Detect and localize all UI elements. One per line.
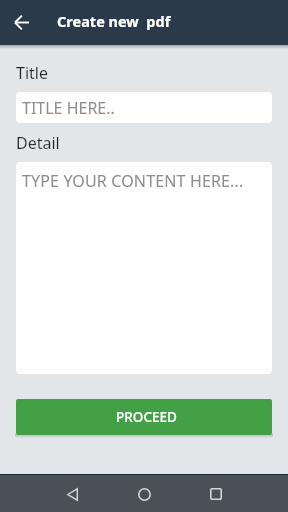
staticText: Detail xyxy=(16,132,60,154)
button[interactable]: Back xyxy=(48,475,96,512)
button[interactable]: PROCEED xyxy=(16,399,272,435)
button[interactable]: Recents xyxy=(192,475,240,512)
staticText: Title xyxy=(16,62,48,84)
staticText: Create new pdf xyxy=(57,11,171,31)
button[interactable]: Back xyxy=(0,0,44,44)
button[interactable]: Home xyxy=(120,475,168,512)
staticText: TITLE HERE.. xyxy=(22,97,115,119)
button[interactable]: TYPE YOUR CONTENT HERE... xyxy=(16,162,272,374)
staticText: TYPE YOUR CONTENT HERE... xyxy=(22,170,244,192)
button[interactable]: TITLE HERE.. xyxy=(16,92,272,123)
staticText: PROCEED xyxy=(116,408,177,426)
